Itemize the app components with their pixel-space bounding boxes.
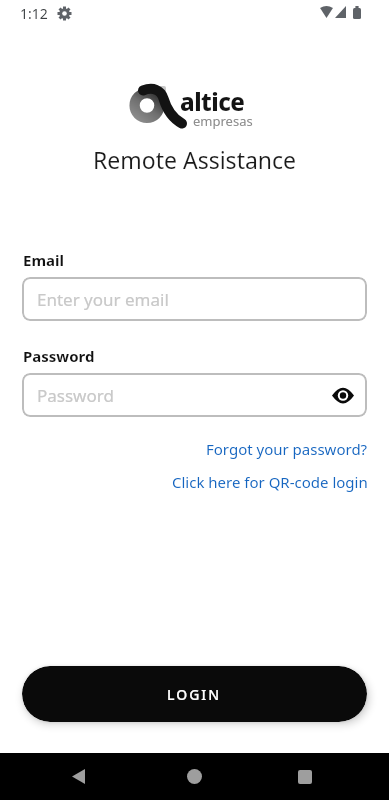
button[interactable]: Password — [22, 373, 367, 417]
staticText: Password — [23, 346, 95, 366]
staticText: empresas — [193, 112, 253, 130]
staticText: LOGIN — [167, 685, 222, 704]
button[interactable] — [176, 761, 213, 792]
button[interactable]: Enter your email — [22, 277, 367, 321]
button[interactable]: Click here for QR-code login — [172, 472, 368, 492]
staticText: Enter your email — [37, 288, 169, 311]
staticText: Password — [37, 384, 114, 407]
staticText: 1:12 — [20, 4, 48, 23]
button[interactable]: LOGIN — [22, 666, 367, 722]
staticText: Remote Assistance — [93, 144, 297, 175]
button[interactable] — [287, 761, 323, 792]
staticText: altice — [180, 85, 245, 118]
staticText: Email — [23, 250, 64, 270]
button[interactable] — [60, 761, 96, 792]
button[interactable] — [323, 375, 363, 415]
button[interactable]: Forgot your password? — [206, 439, 368, 459]
